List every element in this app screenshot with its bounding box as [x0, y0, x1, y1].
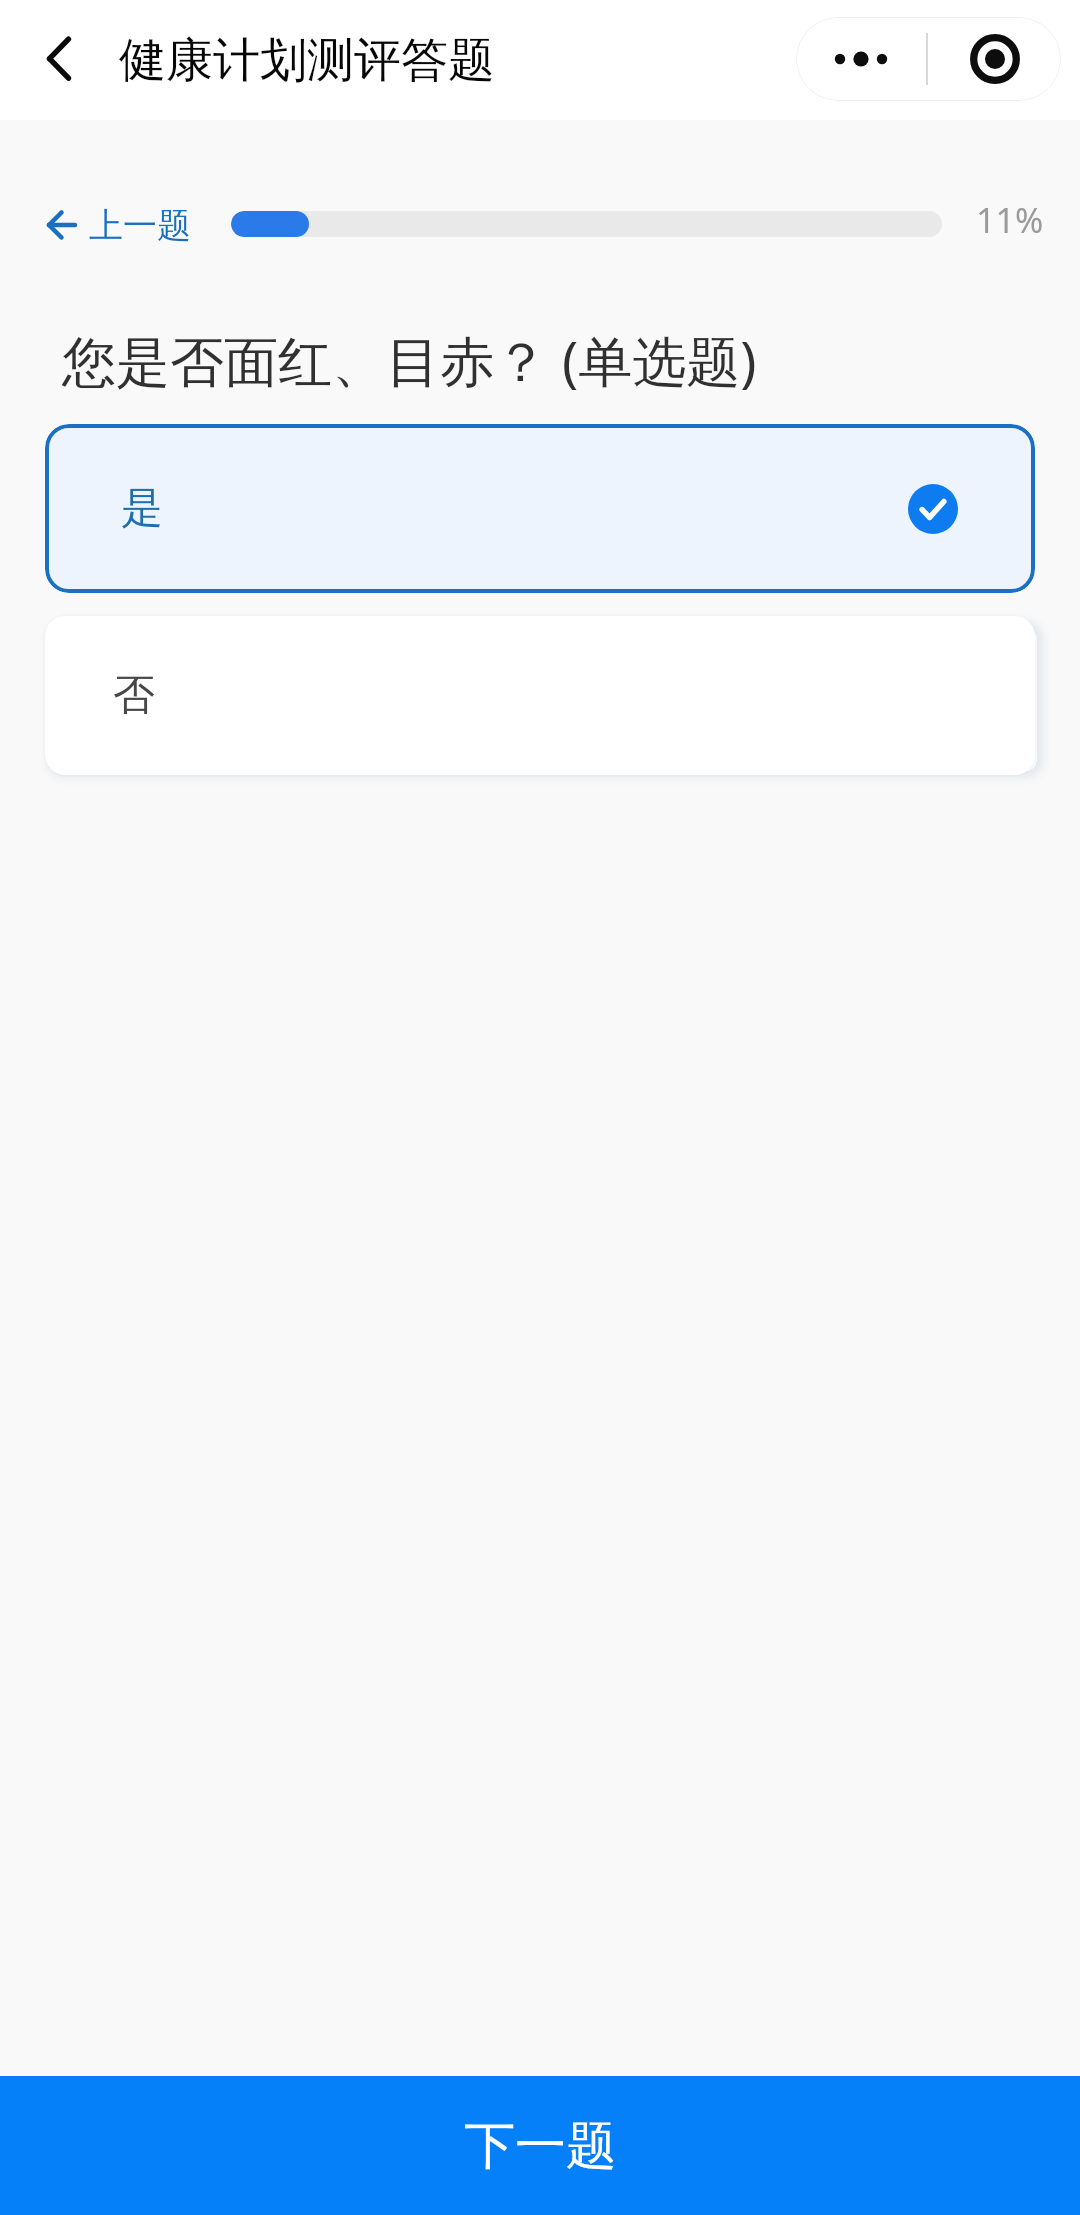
- staticText: 11%: [976, 197, 1044, 243]
- button[interactable]: 下一题: [0, 2076, 1080, 2215]
- button[interactable]: 上一题: [36, 194, 191, 256]
- button[interactable]: Back: [20, 24, 90, 94]
- staticText: 上一题: [89, 204, 191, 247]
- button[interactable]: More options: [796, 17, 926, 101]
- button[interactable]: Close mini program: [928, 17, 1061, 101]
- button[interactable]: 是: [45, 424, 1035, 593]
- staticText: 下一题: [464, 2114, 617, 2178]
- staticText: 是: [121, 482, 163, 535]
- staticText: 否: [113, 669, 155, 722]
- staticText: 健康计划测评答题: [119, 31, 495, 90]
- staticText: 您是否面红、目赤？ (单选题): [62, 323, 757, 397]
- button[interactable]: 否: [45, 616, 1035, 775]
